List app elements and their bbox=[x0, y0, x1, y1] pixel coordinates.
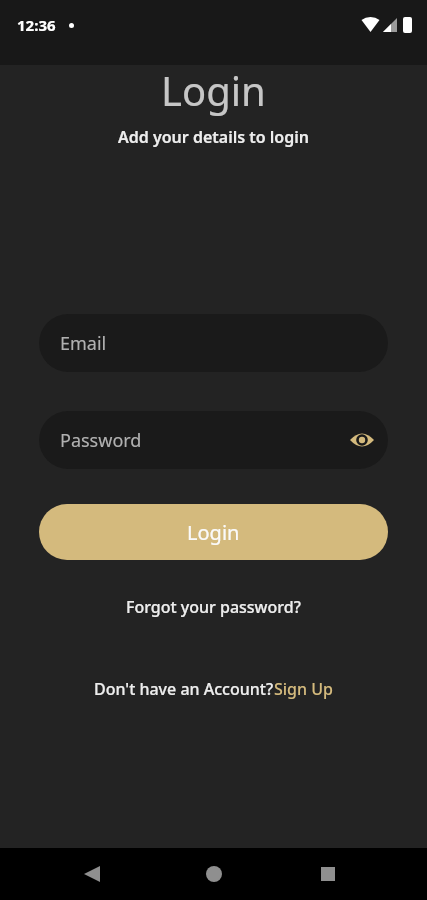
button[interactable]: Don't have an Account? bbox=[94, 678, 333, 700]
button[interactable]: Password bbox=[39, 411, 388, 469]
button[interactable]: Login bbox=[39, 504, 388, 560]
staticText: 12:36 bbox=[17, 15, 56, 35]
button[interactable]: Forgot your password? bbox=[126, 596, 301, 618]
staticText: Don't have an Account? bbox=[94, 678, 274, 700]
staticText: Password bbox=[60, 428, 142, 453]
button[interactable] bbox=[349, 430, 375, 450]
button[interactable] bbox=[206, 866, 222, 882]
button[interactable] bbox=[84, 866, 100, 882]
staticText: Add your details to login bbox=[118, 126, 309, 148]
staticText: Email bbox=[60, 331, 107, 356]
staticText: Login bbox=[161, 63, 266, 117]
button[interactable]: Email bbox=[39, 314, 388, 372]
staticText: Login bbox=[187, 519, 240, 546]
staticText: Sign Up bbox=[274, 678, 333, 700]
